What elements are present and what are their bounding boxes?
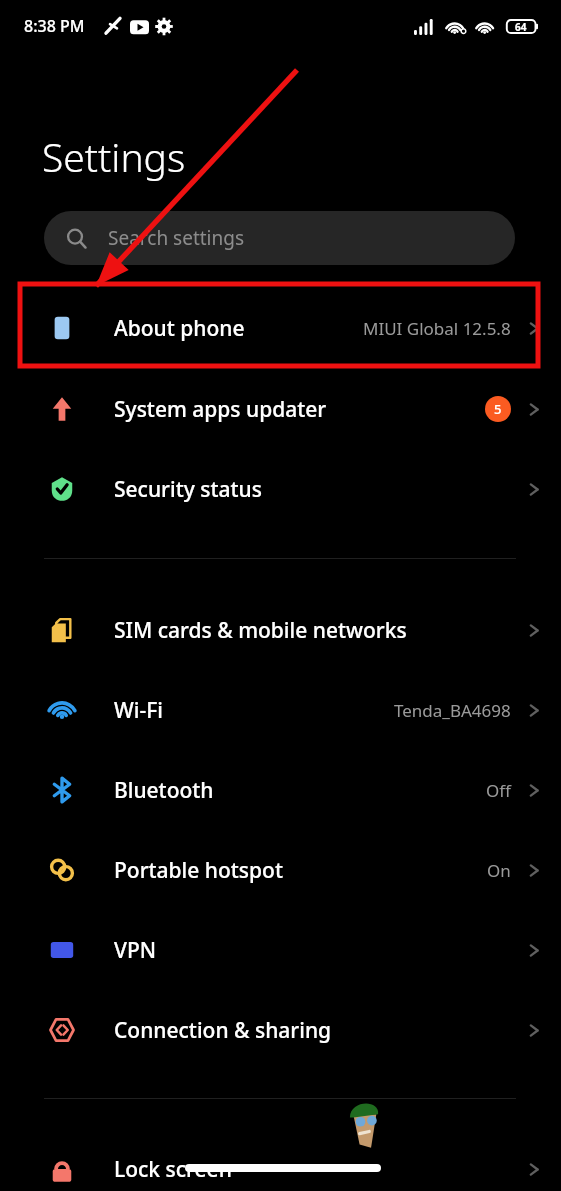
staticText: Security status xyxy=(114,475,262,504)
staticText: Search settings xyxy=(108,225,245,251)
staticText: Settings xyxy=(42,130,186,183)
button[interactable]: Search settings xyxy=(44,211,515,265)
button[interactable]: Connection & sharing xyxy=(0,1004,561,1056)
staticText: Portable hotspot xyxy=(114,856,283,885)
button[interactable]: Portable hotspot xyxy=(0,844,561,896)
button[interactable]: Wi-Fi xyxy=(0,684,561,736)
button[interactable]: About phone xyxy=(0,302,561,354)
staticText: On xyxy=(487,859,511,882)
staticText: Tenda_BA4698 xyxy=(394,699,511,722)
staticText: MIUI Global 12.5.8 xyxy=(363,317,511,340)
staticText: Connection & sharing xyxy=(114,1016,332,1045)
staticText: VPN xyxy=(114,936,157,965)
button[interactable]: Bluetooth xyxy=(0,764,561,816)
staticText: 64 xyxy=(515,20,527,34)
staticText: System apps updater xyxy=(114,395,327,424)
staticText: Lock screen xyxy=(114,1155,232,1184)
button[interactable]: Lock screen xyxy=(0,1143,561,1191)
staticText: SIM cards & mobile networks xyxy=(114,616,407,645)
button[interactable]: System apps updater xyxy=(0,383,561,435)
button[interactable]: Security status xyxy=(0,463,561,515)
staticText: 8:38 PM xyxy=(24,15,85,37)
staticText: Off xyxy=(486,779,511,802)
staticText: 5 xyxy=(494,400,502,418)
staticText: Wi-Fi xyxy=(114,696,163,725)
staticText: About phone xyxy=(114,314,245,343)
staticText: Bluetooth xyxy=(114,776,214,805)
button[interactable]: SIM cards & mobile networks xyxy=(0,604,561,656)
button[interactable]: VPN xyxy=(0,924,561,976)
